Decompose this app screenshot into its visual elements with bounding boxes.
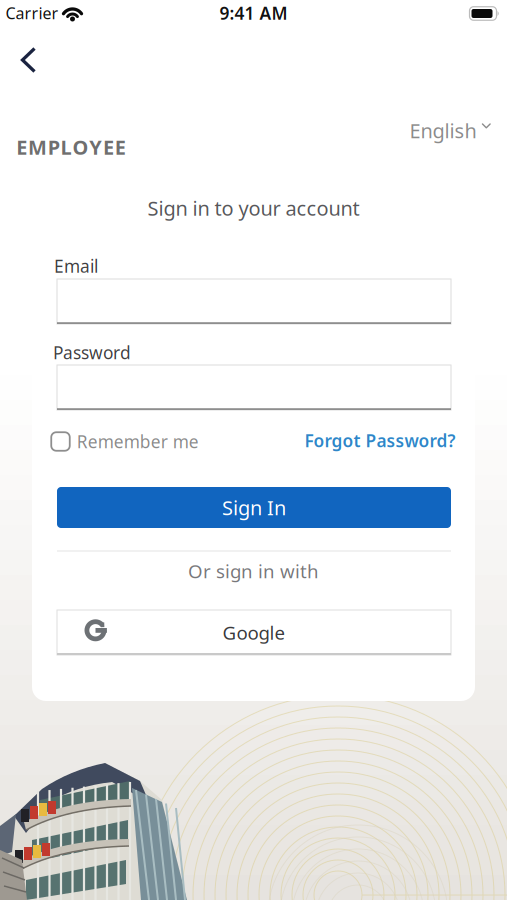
staticText: Email [54,254,98,277]
button[interactable]: Google [57,610,451,655]
button[interactable]: Remember me [51,430,199,453]
staticText: Or sign in with [188,559,319,583]
staticText: EMPLOYEE [16,134,126,160]
staticText: English [409,117,476,144]
button[interactable]: Sign In [57,487,451,528]
button[interactable]: Email [57,279,451,324]
button[interactable]: Back [11,39,45,80]
staticText: Remember me [77,430,199,453]
button[interactable]: English [409,117,490,144]
staticText: 9:41 AM [219,1,287,24]
staticText: Forgot Password? [304,429,455,452]
staticText: Password [53,341,131,364]
button[interactable]: Forgot Password? [304,429,455,452]
staticText: Carrier [5,2,58,24]
staticText: Sign In [222,494,286,521]
button[interactable]: Password [57,365,451,410]
staticText: Sign in to your account [147,195,359,221]
staticText: Google [222,620,285,645]
